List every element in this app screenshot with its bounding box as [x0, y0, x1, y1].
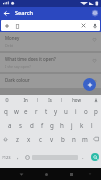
staticText: k — [80, 121, 84, 129]
staticText: j — [71, 121, 73, 129]
button[interactable]: m — [79, 132, 90, 146]
button[interactable]: k — [77, 118, 87, 132]
staticText: . — [82, 153, 84, 161]
button[interactable]: e — [21, 104, 31, 118]
staticText: p — [94, 107, 98, 115]
button[interactable]: Recent apps — [65, 168, 77, 180]
staticText: Money — [5, 35, 20, 41]
staticText: d — [30, 121, 34, 129]
button[interactable]: g — [47, 118, 57, 132]
staticText: r — [35, 107, 38, 115]
staticText: What time does it open? — [5, 56, 56, 62]
button[interactable]: b — [57, 132, 68, 146]
button[interactable]: Add note — [83, 78, 96, 91]
button[interactable]: Home — [40, 168, 52, 180]
button[interactable]: Money — [0, 32, 101, 51]
staticText: t — [45, 107, 48, 115]
staticText: Is — [48, 97, 52, 103]
button[interactable]: o — [81, 104, 91, 118]
staticText: g — [50, 121, 54, 129]
staticText: x — [27, 135, 31, 143]
button[interactable]: v — [46, 132, 57, 146]
staticText: Search — [15, 9, 33, 17]
button[interactable]: how — [62, 95, 90, 104]
button[interactable]: a — [4, 118, 15, 132]
button[interactable]: In — [14, 95, 37, 104]
staticText: c — [39, 135, 42, 143]
button[interactable]: n — [68, 132, 79, 146]
button[interactable]: Clear — [1, 20, 100, 31]
staticText: w — [14, 107, 19, 115]
button[interactable]: j — [67, 118, 77, 132]
button[interactable]: Emoji — [22, 146, 32, 168]
staticText: ?123 — [2, 155, 11, 160]
staticText: how — [72, 97, 81, 103]
staticText: l — [91, 121, 93, 129]
button[interactable]: More options — [90, 95, 101, 104]
button[interactable]: z — [11, 132, 23, 146]
button[interactable]: t — [41, 104, 51, 118]
staticText: e — [24, 107, 28, 115]
staticText: v — [50, 135, 54, 143]
staticText: Dark colour — [5, 77, 30, 83]
staticText: y — [54, 107, 58, 115]
staticText: In — [23, 97, 28, 103]
staticText: m — [82, 135, 88, 143]
button[interactable]: Back — [15, 168, 27, 180]
button[interactable]: Backspace — [90, 132, 101, 146]
button[interactable]: x — [23, 132, 35, 146]
button[interactable]: Clear — [78, 20, 89, 31]
staticText: s — [19, 121, 22, 129]
staticText: , — [17, 153, 19, 161]
button[interactable]: d — [26, 118, 37, 132]
button[interactable]: i — [71, 104, 81, 118]
button[interactable]: l — [87, 118, 97, 132]
button[interactable]: Shift — [0, 132, 11, 146]
button[interactable]: Favourite — [90, 35, 98, 43]
staticText: a — [8, 121, 12, 129]
staticText: b — [61, 135, 65, 143]
button[interactable]: ?123 — [0, 146, 13, 168]
staticText: Debt — [5, 43, 14, 48]
staticText: n — [72, 135, 76, 143]
button[interactable]: w — [11, 104, 21, 118]
button[interactable]: Back — [0, 7, 12, 19]
button[interactable]: Dark colour — [0, 74, 101, 88]
button[interactable]: f — [37, 118, 47, 132]
button[interactable]: h — [57, 118, 67, 132]
staticText: u — [64, 107, 68, 115]
staticText: i — [75, 107, 77, 115]
staticText: f — [41, 121, 44, 129]
button[interactable]: Hide keyboard — [84, 168, 96, 180]
button[interactable]: Voice search — [89, 20, 100, 31]
button[interactable]: u — [61, 104, 71, 118]
button[interactable]: Favourite — [90, 56, 98, 64]
staticText: I she say open? — [5, 64, 31, 69]
button[interactable]: q — [0, 104, 11, 118]
button[interactable]: Is — [38, 95, 61, 104]
button[interactable]: , — [13, 146, 22, 168]
button[interactable]: y — [51, 104, 61, 118]
staticText: o — [84, 107, 88, 115]
button[interactable]: Search — [88, 146, 101, 168]
button[interactable]: Favourite — [90, 77, 98, 85]
staticText: q — [4, 107, 8, 115]
button[interactable]: r — [31, 104, 41, 118]
button[interactable]: s — [15, 118, 26, 132]
button[interactable]: Clipboard — [0, 95, 14, 104]
button[interactable]: What time does it open? — [0, 53, 101, 72]
button[interactable]: p — [91, 104, 101, 118]
staticText: h — [60, 121, 64, 129]
staticText: z — [16, 135, 19, 143]
button[interactable]: Settings — [89, 7, 101, 19]
button[interactable]: c — [35, 132, 46, 146]
